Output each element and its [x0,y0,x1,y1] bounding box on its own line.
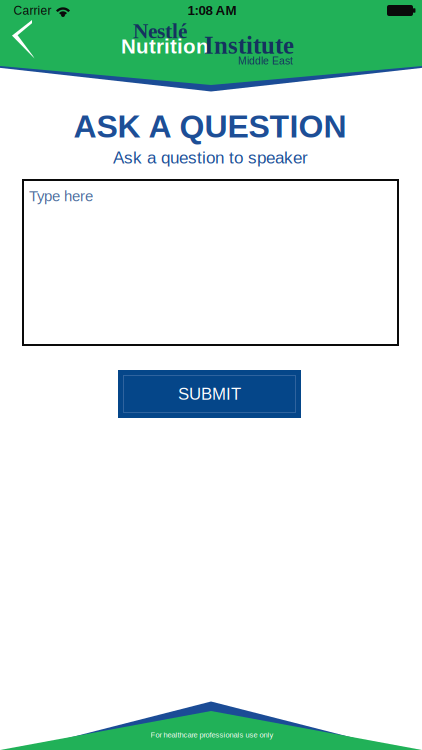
staticText: Carrier [13,4,51,17]
staticText: Ask a question to speaker [113,148,308,167]
staticText: SUBMIT [178,385,241,403]
staticText: Nutrition [121,35,209,58]
staticText: Type here [29,188,93,204]
staticText: Middle East [238,55,293,67]
button[interactable]: Back [2,16,46,64]
staticText: 1:08 AM [187,3,236,18]
button[interactable]: SUBMIT [118,370,301,418]
staticText: For healthcare professionals use only [150,731,273,739]
staticText: Institute [204,32,294,59]
staticText: ASK A QUESTION [73,109,346,144]
staticText: Nestlé [133,19,187,43]
